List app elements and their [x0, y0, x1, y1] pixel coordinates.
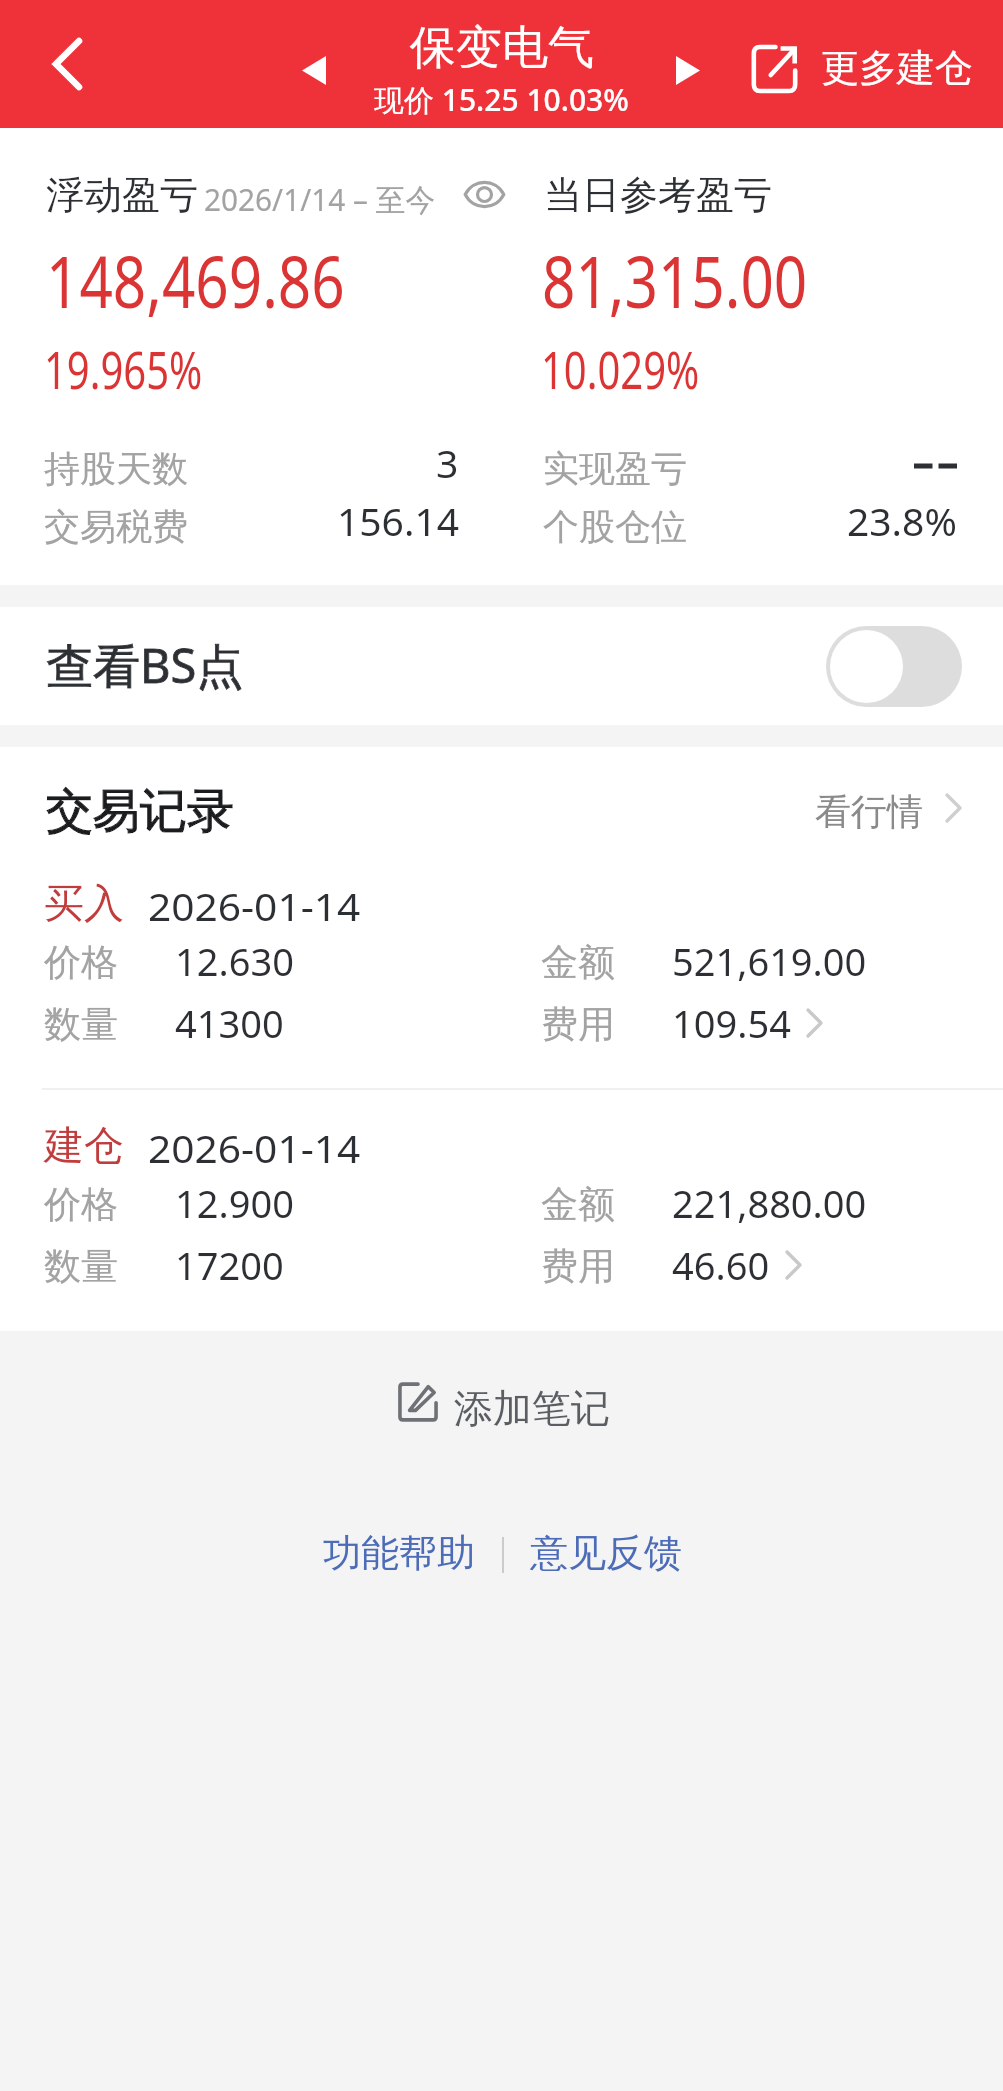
button[interactable]: Next stock	[656, 24, 720, 116]
staticText: 148,469.86	[46, 232, 345, 329]
staticText: 当日参考盈亏	[544, 171, 772, 219]
staticText: 价格	[44, 939, 118, 986]
staticText: 81,315.00	[542, 232, 808, 329]
staticText: 41300	[175, 997, 284, 1049]
staticText: 交易税费	[44, 504, 188, 549]
staticText: 意见反馈	[530, 1529, 682, 1577]
staticText: 521,619.00	[672, 935, 867, 987]
staticText: 交易记录	[46, 782, 234, 841]
staticText: 查看BS点	[46, 633, 244, 697]
staticText: 2026-01-14	[148, 1122, 361, 1174]
staticText: 个股仓位	[543, 504, 687, 549]
button[interactable]: Back	[29, 0, 105, 128]
button[interactable]: 买入	[0, 875, 1003, 1065]
staticText: 浮动盈亏	[46, 171, 198, 219]
staticText: 添加笔记	[454, 1384, 610, 1433]
button[interactable]: 看行情	[800, 775, 980, 845]
button[interactable]: 建仓	[0, 1117, 1003, 1307]
button[interactable]: 功能帮助	[311, 1525, 487, 1581]
staticText: 数量	[44, 1001, 118, 1048]
staticText: 金额	[541, 939, 615, 986]
staticText: 查看BS点	[46, 633, 244, 697]
staticText: 价格	[44, 1181, 118, 1228]
staticText: 交易记录	[46, 782, 234, 841]
staticText: 46.60	[672, 1239, 770, 1291]
staticText: 更多建仓	[821, 44, 973, 92]
staticText: 看行情	[815, 789, 923, 834]
staticText: 156.14	[337, 494, 459, 547]
staticText: 数量	[44, 1243, 118, 1290]
staticText: 10.029%	[541, 334, 699, 403]
staticText: 23.8%	[847, 494, 957, 547]
staticText: 保变电气	[410, 19, 594, 77]
button[interactable]: 查看BS点	[0, 607, 1003, 725]
button[interactable]: 意见反馈	[518, 1525, 694, 1581]
staticText: 12.630	[175, 935, 294, 987]
staticText: 现价 15.25 10.03%	[374, 79, 629, 120]
staticText: 金额	[541, 1181, 615, 1228]
staticText: 19.965%	[44, 334, 202, 403]
button[interactable]: 添加笔记	[380, 1372, 628, 1442]
staticText: 功能帮助	[323, 1529, 475, 1577]
staticText: 3	[436, 436, 459, 489]
staticText: 221,880.00	[672, 1177, 867, 1229]
staticText: 2026-01-14	[148, 880, 361, 932]
staticText: 费用	[541, 1243, 615, 1290]
staticText: 109.54	[672, 997, 791, 1049]
staticText: 建仓	[44, 1120, 124, 1170]
button[interactable]: Previous stock	[282, 24, 346, 116]
staticText: 17200	[175, 1239, 284, 1291]
staticText: 费用	[541, 1001, 615, 1048]
staticText: 持股天数	[44, 446, 188, 491]
staticText: 买入	[44, 878, 124, 928]
button[interactable]: Toggle amount visibility	[461, 171, 507, 217]
staticText: 实现盈亏	[543, 446, 687, 491]
staticText: 12.900	[175, 1177, 294, 1229]
staticText: 2026/1/14 – 至今	[204, 178, 435, 220]
button[interactable]: 更多建仓	[734, 0, 986, 128]
